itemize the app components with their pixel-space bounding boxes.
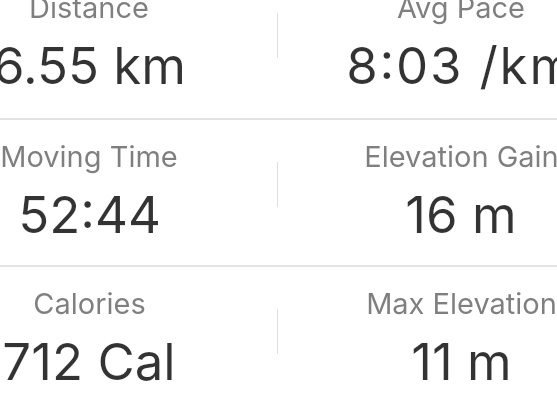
button[interactable]: Avg Pace bbox=[275, 0, 557, 116]
button[interactable]: Moving Time bbox=[0, 118, 275, 265]
staticText: 11 m bbox=[411, 331, 512, 393]
staticText: 16 m bbox=[405, 184, 517, 246]
staticText: 8:03 /km bbox=[346, 35, 557, 97]
staticText: 6.55 km bbox=[0, 35, 186, 97]
staticText: Avg Pace bbox=[397, 0, 525, 25]
staticText: Max Elevation bbox=[366, 286, 557, 321]
staticText: Distance bbox=[29, 0, 149, 25]
staticText: Moving Time bbox=[0, 139, 178, 174]
button[interactable]: Distance bbox=[0, 0, 275, 116]
staticText: 712 Cal bbox=[2, 331, 176, 393]
button[interactable]: Max Elevation bbox=[275, 265, 557, 394]
button[interactable]: Elevation Gain bbox=[275, 118, 557, 265]
staticText: Elevation Gain bbox=[364, 139, 557, 174]
staticText: Calories bbox=[33, 286, 146, 321]
staticText: 52:44 bbox=[18, 184, 161, 246]
button[interactable]: Calories bbox=[0, 265, 275, 394]
